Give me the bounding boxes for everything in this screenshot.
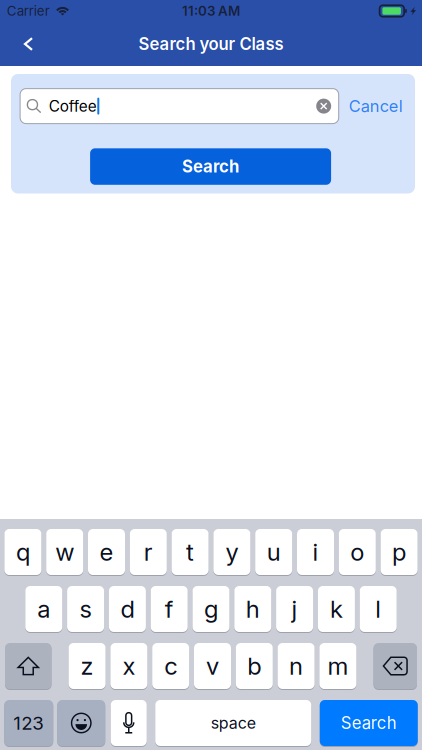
staticText: q bbox=[16, 537, 30, 566]
staticText: n bbox=[289, 651, 303, 680]
staticText: Carrier bbox=[7, 3, 50, 19]
button[interactable]: k bbox=[318, 586, 355, 632]
staticText: p bbox=[392, 537, 406, 566]
button[interactable]: j bbox=[276, 586, 313, 632]
button[interactable]: f bbox=[151, 586, 188, 632]
button[interactable]: Emoji bbox=[57, 700, 105, 746]
button[interactable]: a bbox=[25, 586, 62, 632]
button[interactable]: b bbox=[236, 643, 273, 689]
staticText: o bbox=[350, 537, 364, 566]
staticText: k bbox=[330, 594, 343, 623]
staticText: f bbox=[165, 594, 174, 623]
staticText: c bbox=[164, 651, 177, 680]
staticText: y bbox=[225, 537, 238, 566]
staticText: z bbox=[81, 651, 94, 680]
button[interactable]: Dictate bbox=[111, 700, 147, 746]
staticText: x bbox=[122, 651, 135, 680]
button[interactable]: m bbox=[319, 643, 356, 689]
staticText: v bbox=[206, 651, 219, 680]
button[interactable]: x bbox=[110, 643, 147, 689]
button[interactable]: t bbox=[172, 529, 209, 575]
staticText: d bbox=[120, 594, 134, 623]
button[interactable]: Search bbox=[90, 148, 331, 185]
button[interactable]: v bbox=[194, 643, 231, 689]
button[interactable]: n bbox=[278, 643, 315, 689]
button[interactable]: space bbox=[155, 700, 311, 746]
button[interactable]: l bbox=[360, 586, 397, 632]
staticText: i bbox=[312, 537, 318, 566]
staticText: Search bbox=[182, 156, 239, 177]
staticText: Coffee bbox=[49, 97, 97, 115]
button[interactable]: s bbox=[67, 586, 104, 632]
staticText: Cancel bbox=[349, 96, 403, 116]
staticText: space bbox=[211, 713, 256, 733]
staticText: m bbox=[327, 651, 348, 680]
staticText: 123 bbox=[13, 712, 44, 734]
staticText: r bbox=[144, 537, 153, 566]
button[interactable]: i bbox=[297, 529, 334, 575]
staticText: e bbox=[99, 537, 113, 566]
button[interactable]: e bbox=[88, 529, 125, 575]
button[interactable]: d bbox=[109, 586, 146, 632]
button[interactable]: u bbox=[255, 529, 292, 575]
staticText: 11:03 AM bbox=[182, 3, 240, 19]
button[interactable]: Back bbox=[9, 24, 47, 64]
staticText: b bbox=[247, 651, 261, 680]
button[interactable]: Search bbox=[320, 700, 418, 746]
staticText: u bbox=[267, 537, 281, 566]
button[interactable]: r bbox=[130, 529, 167, 575]
button[interactable]: w bbox=[46, 529, 83, 575]
staticText: t bbox=[186, 537, 194, 566]
button[interactable]: Delete bbox=[373, 643, 417, 689]
button[interactable]: 123 bbox=[4, 700, 53, 746]
button[interactable]: y bbox=[213, 529, 250, 575]
button[interactable]: o bbox=[339, 529, 376, 575]
staticText: s bbox=[80, 594, 92, 623]
button[interactable]: Cancel bbox=[339, 89, 408, 124]
button[interactable]: h bbox=[234, 586, 271, 632]
button[interactable]: p bbox=[381, 529, 418, 575]
button[interactable]: q bbox=[4, 529, 41, 575]
button[interactable]: g bbox=[192, 586, 229, 632]
staticText: j bbox=[292, 594, 298, 623]
staticText: l bbox=[375, 594, 381, 623]
staticText: g bbox=[204, 594, 218, 623]
staticText: Search your Class bbox=[138, 34, 283, 54]
button[interactable]: Shift bbox=[5, 643, 51, 689]
staticText: a bbox=[37, 594, 50, 623]
staticText: Search bbox=[341, 713, 397, 733]
staticText: h bbox=[246, 594, 260, 623]
button[interactable]: c bbox=[152, 643, 189, 689]
button[interactable]: z bbox=[69, 643, 106, 689]
staticText: w bbox=[55, 537, 74, 566]
